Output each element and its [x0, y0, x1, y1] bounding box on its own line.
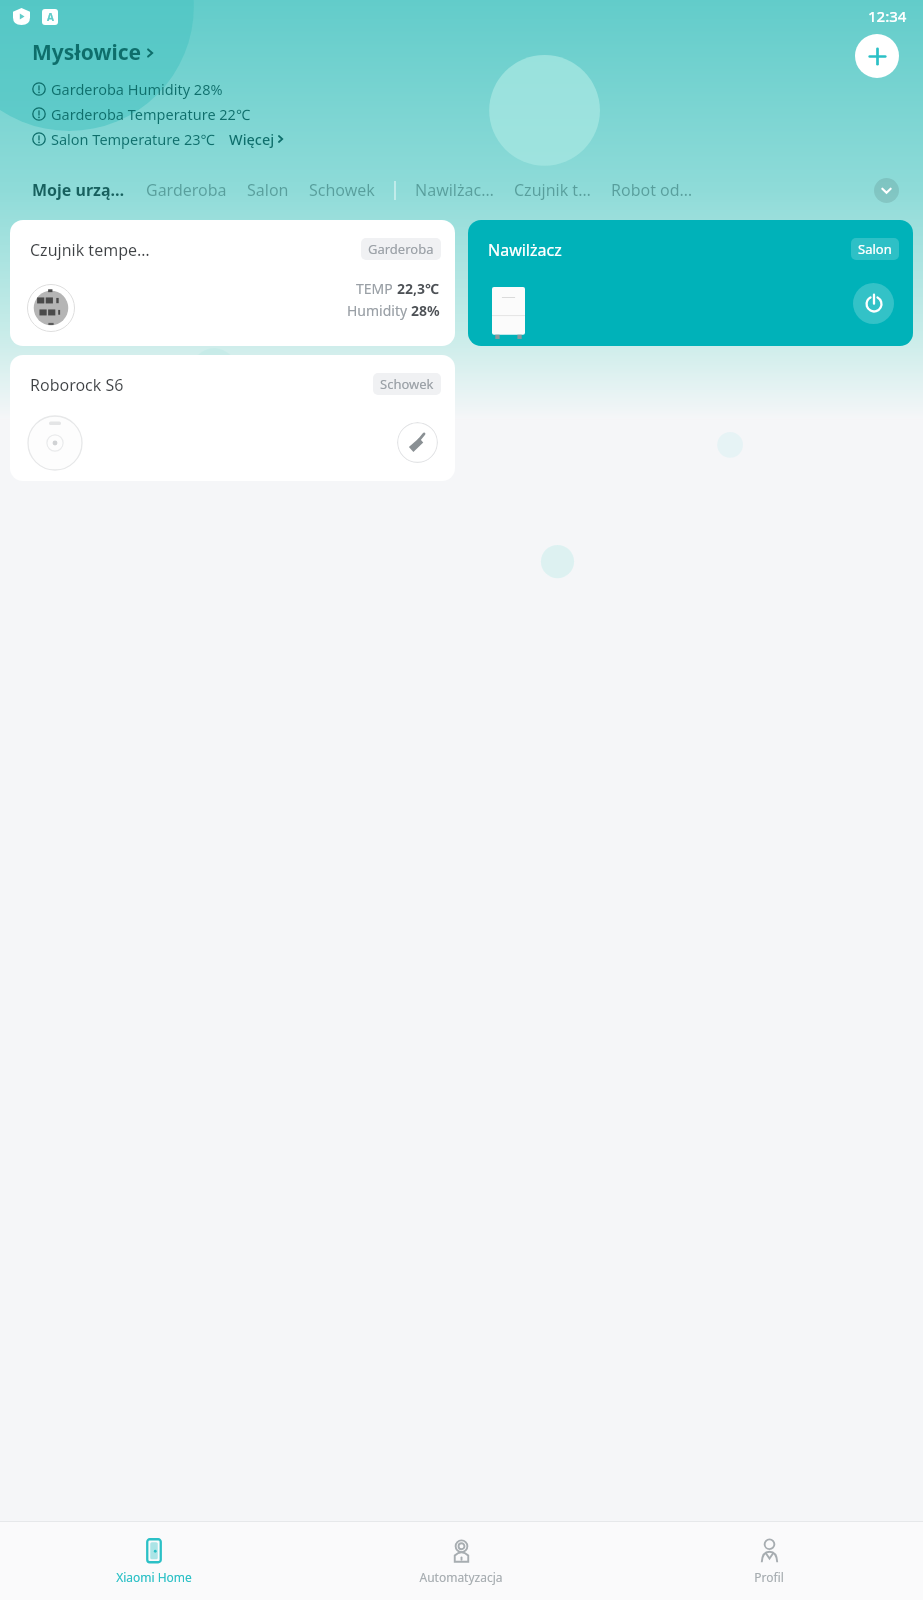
staticText: Schowek — [380, 375, 434, 393]
staticText: Czujnik t… — [514, 179, 591, 201]
staticText: Salon Temperature 23℃ — [51, 129, 215, 149]
staticText: Nawilżac… — [415, 179, 494, 201]
staticText: A — [47, 10, 54, 24]
button[interactable]: Schowek — [309, 179, 375, 201]
staticText: Roborock S6 — [30, 374, 124, 396]
staticText: Salon — [858, 240, 892, 258]
button[interactable]: Nawilżac… — [415, 179, 494, 201]
staticText: Nawilżacz — [488, 239, 562, 261]
button[interactable]: Expand tabs — [874, 178, 899, 203]
button[interactable]: Nawilżacz — [468, 220, 913, 346]
button[interactable]: Automatyzacja — [307, 1522, 615, 1600]
button[interactable]: Czujnik tempe… — [10, 220, 455, 346]
staticText: Automatyzacja — [419, 1569, 503, 1585]
button[interactable]: Profil — [615, 1522, 923, 1600]
staticText: Xiaomi Home — [116, 1569, 192, 1585]
button[interactable]: Mysłowice — [32, 38, 153, 67]
staticText: Schowek — [309, 179, 375, 201]
staticText: Garderoba Temperature 22℃ — [51, 104, 251, 124]
button[interactable]: Więcej — [229, 129, 283, 149]
button[interactable]: Add device — [855, 34, 899, 78]
staticText: 22,3℃ — [397, 279, 440, 298]
button[interactable]: Roborock S6 — [10, 355, 455, 481]
staticText: Garderoba — [146, 179, 227, 201]
staticText: Mysłowice — [32, 38, 142, 67]
staticText: Garderoba — [368, 240, 434, 258]
staticText: 12:34 — [868, 6, 907, 26]
button[interactable]: Power — [853, 283, 894, 324]
staticText: 28% — [411, 301, 440, 320]
button[interactable]: Salon — [247, 179, 289, 201]
staticText: Moje urzą… — [32, 179, 125, 201]
button[interactable]: Czujnik t… — [514, 179, 591, 201]
button[interactable]: Garderoba — [146, 179, 227, 201]
button[interactable]: Clean — [397, 422, 438, 463]
staticText: Robot od… — [611, 179, 693, 201]
staticText: TEMP — [356, 279, 397, 298]
staticText: Humidity — [347, 301, 411, 320]
staticText: Czujnik tempe… — [30, 239, 150, 261]
button[interactable]: Xiaomi Home — [0, 1522, 307, 1600]
staticText: Garderoba Humidity 28% — [51, 79, 223, 99]
button[interactable]: Moje urzą… — [32, 179, 125, 201]
staticText: Profil — [754, 1569, 784, 1585]
staticText: Więcej — [229, 129, 275, 149]
staticText: Salon — [247, 179, 289, 201]
button[interactable]: Robot od… — [611, 179, 693, 201]
